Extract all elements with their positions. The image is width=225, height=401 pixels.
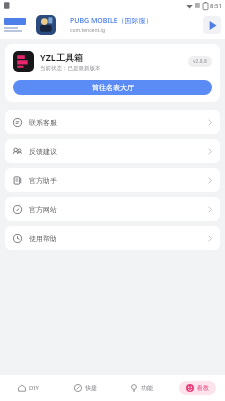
staticText: 快捷: [85, 384, 97, 392]
staticText: 官方助手: [29, 176, 57, 185]
button[interactable]: 快捷: [72, 381, 99, 395]
staticText: YZL工具箱: [40, 51, 83, 63]
button[interactable]: 官方助手: [5, 168, 220, 192]
button[interactable]: 联系客服: [5, 110, 220, 134]
staticText: DIY: [29, 384, 39, 392]
staticText: 看教: [197, 384, 209, 392]
button[interactable]: v2.8.8: [188, 56, 212, 67]
staticText: 联系客服: [29, 118, 57, 127]
button[interactable]: 简往名表大厅: [13, 80, 212, 95]
staticText: com.tencent.ig: [70, 27, 105, 34]
staticText: 使用帮助: [29, 234, 57, 243]
button[interactable]: Play: [203, 16, 221, 34]
staticText: v2.8.8: [193, 58, 207, 65]
button[interactable]: 功能: [128, 381, 155, 395]
button[interactable]: PUBG MOBILE（国际服）: [0, 11, 225, 39]
staticText: PUBG MOBILE（国际服）: [70, 16, 153, 26]
staticText: 8:51: [210, 2, 222, 10]
button[interactable]: 官方网站: [5, 197, 220, 221]
staticText: 官方网站: [29, 205, 57, 214]
button[interactable]: DIY: [16, 381, 41, 395]
staticText: 功能: [141, 384, 153, 392]
button[interactable]: 反馈建议: [5, 139, 220, 163]
button[interactable]: 看教: [179, 381, 216, 395]
staticText: 反馈建议: [29, 147, 57, 156]
staticText: 简往名表大厅: [92, 83, 134, 92]
staticText: 当前状态：已是最新版本: [40, 65, 101, 72]
button[interactable]: 使用帮助: [5, 226, 220, 250]
